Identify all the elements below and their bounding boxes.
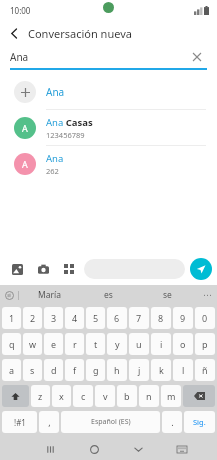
button[interactable]: w [23, 333, 42, 355]
staticText: Ana Casas [46, 116, 93, 129]
button[interactable]: ñ [195, 359, 215, 381]
button[interactable]: 1 [2, 307, 21, 329]
staticText: d [51, 364, 57, 376]
staticText: Ana [46, 85, 65, 99]
button[interactable]: h [107, 359, 127, 381]
button[interactable]: i [151, 333, 171, 355]
button[interactable]: r [65, 333, 84, 355]
staticText: u [136, 338, 142, 350]
staticText: l [182, 364, 185, 376]
staticText: n [146, 390, 152, 402]
button[interactable]: es [79, 285, 138, 305]
button[interactable]: 4 [65, 307, 84, 329]
button[interactable]: x [52, 385, 71, 407]
staticText: e [51, 338, 57, 350]
button[interactable]: . [162, 411, 182, 433]
button[interactable]: Backspace [183, 385, 215, 407]
button[interactable]: María [19, 285, 79, 305]
staticText: r [73, 338, 77, 350]
button[interactable]: e [44, 333, 63, 355]
button[interactable]: c [73, 385, 93, 407]
button[interactable]: z [31, 385, 50, 407]
button[interactable]: Keyboard layout [160, 438, 204, 460]
staticText: 4 [72, 312, 78, 324]
button[interactable]: t [86, 333, 105, 355]
staticText: 9 [180, 312, 186, 324]
button[interactable]: Camera [32, 258, 54, 280]
staticText: es [104, 289, 113, 301]
staticText: Sig. [193, 417, 206, 427]
staticText: 5 [93, 312, 99, 324]
button[interactable]: 9 [173, 307, 193, 329]
staticText: ñ [202, 364, 208, 376]
button[interactable]: p [195, 333, 215, 355]
button[interactable]: 7 [129, 307, 149, 329]
staticText: k [159, 364, 164, 376]
button[interactable]: y [107, 333, 127, 355]
button[interactable]: v [95, 385, 115, 407]
button[interactable]: l [173, 359, 193, 381]
button[interactable]: j [129, 359, 149, 381]
button[interactable]: , [39, 411, 59, 433]
button[interactable]: Recents [28, 438, 72, 460]
button[interactable]: n [139, 385, 159, 407]
staticText: A [22, 158, 28, 170]
button[interactable]: u [129, 333, 149, 355]
button[interactable]: s [23, 359, 42, 381]
staticText: 8 [158, 312, 164, 324]
staticText: w [29, 338, 37, 350]
button[interactable]: 2 [23, 307, 42, 329]
button[interactable]: Ana [5, 75, 212, 109]
button[interactable]: q [2, 333, 21, 355]
button[interactable]: o [173, 333, 193, 355]
staticText: 1 [9, 312, 15, 324]
button[interactable]: Shift [2, 385, 29, 407]
button[interactable]: Español (ES) [61, 411, 160, 433]
staticText: 7 [136, 312, 142, 324]
staticText: v [103, 390, 108, 402]
button[interactable]: More suggestions [197, 285, 217, 305]
staticText: h [114, 364, 120, 376]
button[interactable]: 6 [107, 307, 127, 329]
button[interactable]: Home [72, 438, 116, 460]
staticText: 123456789 [46, 130, 85, 140]
button[interactable]: Back [0, 20, 28, 46]
staticText: Conversación nueva [28, 26, 132, 41]
button[interactable] [84, 259, 185, 279]
button[interactable]: b [117, 385, 137, 407]
staticText: 2 [30, 312, 36, 324]
staticText: , [48, 416, 51, 428]
staticText: María [38, 289, 61, 301]
button[interactable]: Gallery [6, 258, 28, 280]
button[interactable]: More options [58, 258, 80, 280]
button[interactable]: 8 [151, 307, 171, 329]
button[interactable]: A [5, 146, 212, 181]
staticText: p [202, 338, 208, 350]
staticText: ⋯ [203, 290, 212, 300]
button[interactable]: f [65, 359, 84, 381]
staticText: i [160, 338, 163, 350]
button[interactable]: 5 [86, 307, 105, 329]
staticText: 0 [202, 312, 208, 324]
button[interactable]: d [44, 359, 63, 381]
button[interactable]: Sig. [184, 411, 215, 433]
button[interactable]: se [138, 285, 197, 305]
button[interactable]: !#1 [2, 411, 37, 433]
staticText: t [94, 338, 98, 350]
button[interactable]: a [2, 359, 21, 381]
button[interactable]: 0 [195, 307, 215, 329]
staticText: z [38, 390, 43, 402]
button[interactable]: A [5, 110, 212, 145]
button[interactable]: Send [190, 258, 212, 280]
staticText: a [9, 364, 15, 376]
button[interactable]: g [86, 359, 105, 381]
button[interactable]: 3 [44, 307, 63, 329]
button[interactable]: m [161, 385, 181, 407]
button[interactable]: Clear [187, 47, 207, 67]
button[interactable]: k [151, 359, 171, 381]
staticText: Ana [46, 152, 64, 165]
staticText: f [73, 364, 77, 376]
staticText: 3 [51, 312, 57, 324]
button[interactable]: Hide keyboard [116, 438, 160, 460]
button[interactable]: Voice input [0, 286, 18, 304]
